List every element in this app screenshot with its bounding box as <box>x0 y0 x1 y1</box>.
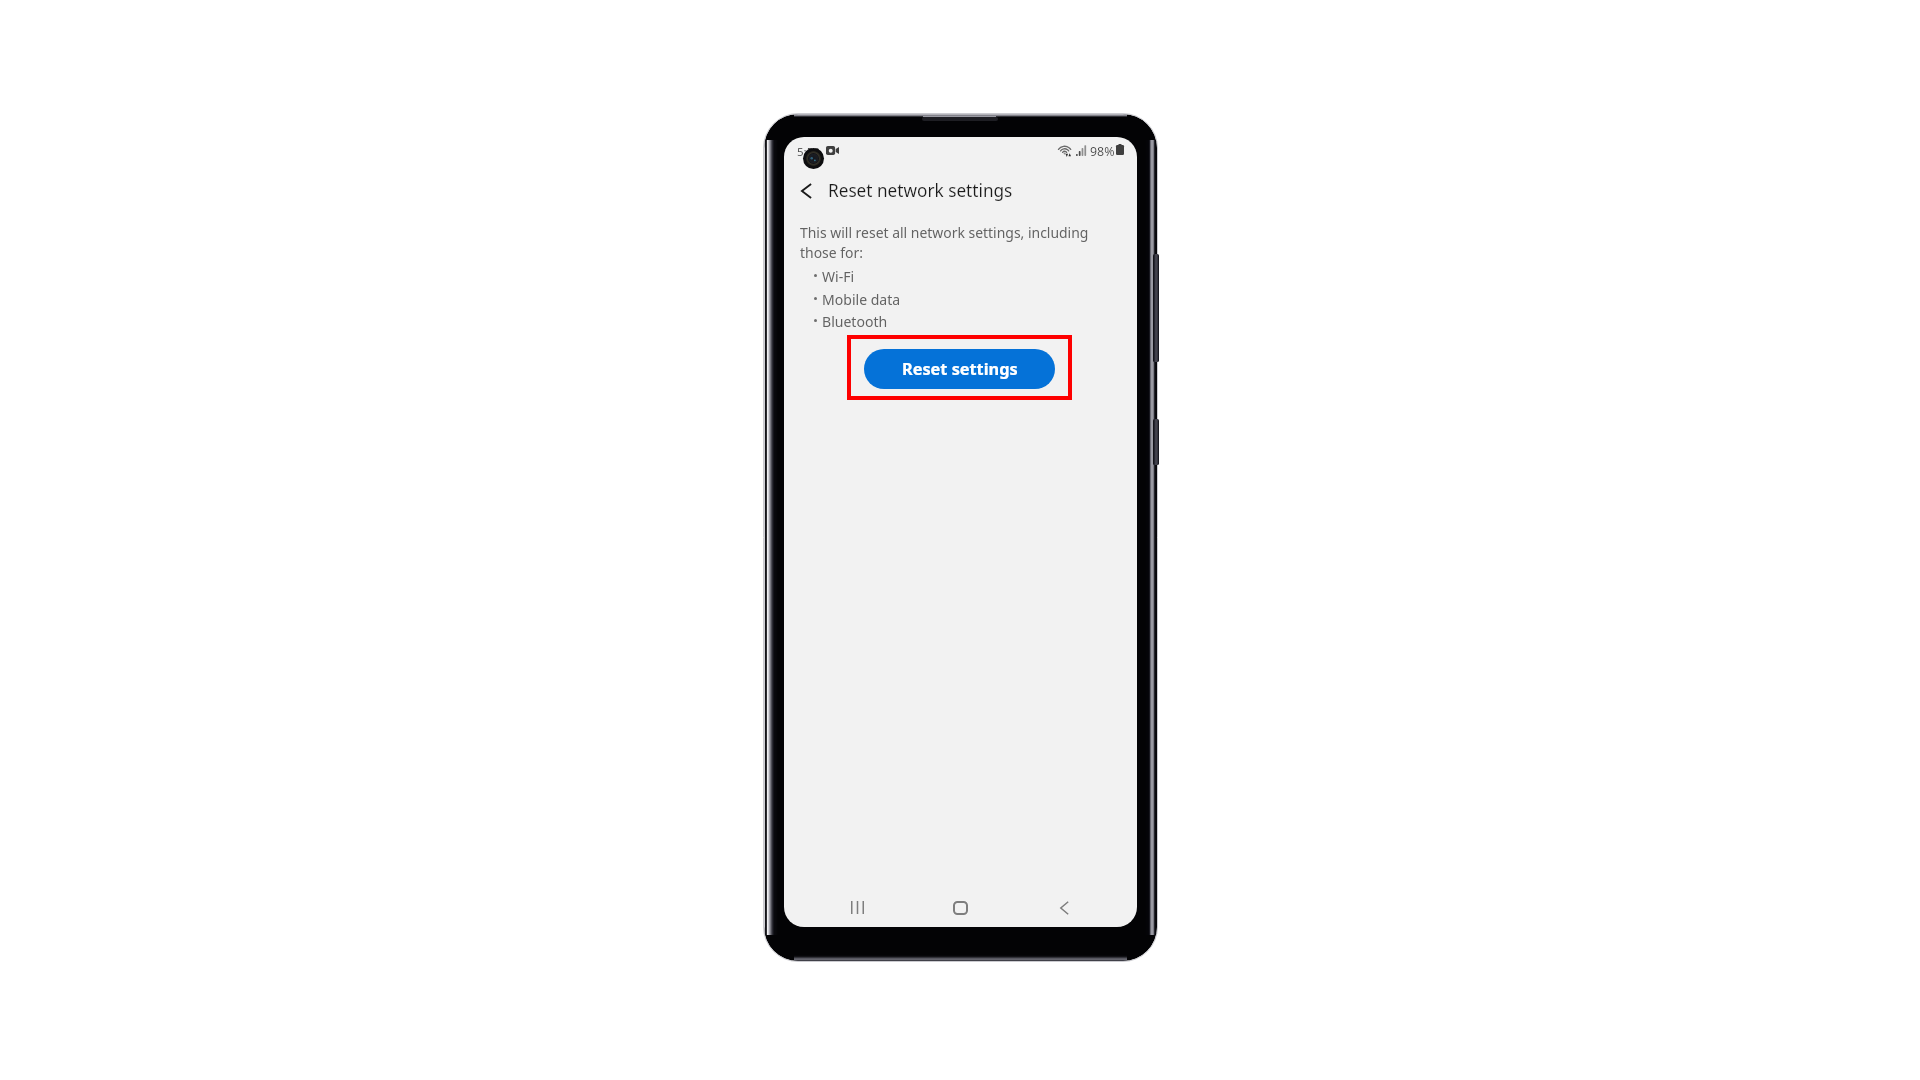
staticText: Bluetooth <box>822 312 888 331</box>
staticText: Reset settings <box>902 358 1018 380</box>
staticText: Mobile data <box>822 290 901 309</box>
button[interactable]: Back <box>1036 885 1092 927</box>
button[interactable]: Back <box>789 171 823 210</box>
button[interactable]: Mobile data <box>808 287 1008 310</box>
button[interactable]: Reset settings <box>864 349 1055 389</box>
button[interactable]: Wi-Fi <box>808 264 1008 287</box>
staticText: This will reset all network settings, in… <box>800 223 1096 262</box>
button[interactable]: Home <box>932 885 988 927</box>
staticText: Wi-Fi <box>822 267 855 286</box>
staticText: 5:58 <box>797 144 820 160</box>
staticText: Reset network settings <box>828 179 1013 202</box>
staticText: 98% <box>1090 143 1115 160</box>
button[interactable]: Recent apps <box>829 885 885 927</box>
button[interactable]: Bluetooth <box>808 309 1008 332</box>
